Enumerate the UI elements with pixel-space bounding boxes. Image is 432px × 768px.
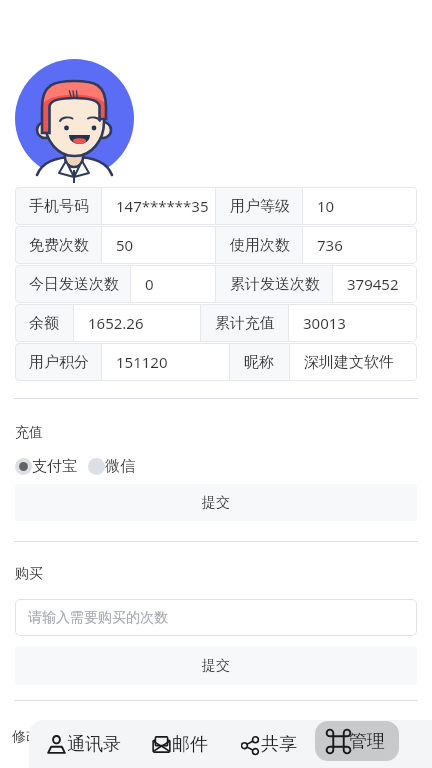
staticText: 今日发送次数 (29, 275, 119, 294)
button[interactable]: 提交 (15, 484, 417, 521)
staticText: 累计充值 (215, 314, 275, 333)
staticText: 0 (145, 274, 154, 294)
staticText: 379452 (347, 274, 399, 294)
staticText: 邮件 (172, 733, 208, 756)
button[interactable]: 通讯录 (47, 720, 121, 768)
staticText: 余额 (29, 314, 59, 333)
button[interactable]: 共享 (241, 720, 297, 768)
staticText: 购买 (15, 565, 43, 583)
button[interactable]: 支付宝 (15, 457, 77, 476)
button[interactable]: 邮件 (152, 720, 208, 768)
staticText: 147******35 (116, 196, 209, 216)
staticText: 使用次数 (230, 236, 290, 255)
staticText: 151120 (116, 352, 168, 372)
button[interactable]: 提交 (15, 646, 417, 685)
staticText: 提交 (202, 657, 230, 675)
staticText: 充值 (15, 424, 43, 442)
staticText: 共享 (261, 733, 297, 756)
staticText: 昵称 (244, 353, 274, 372)
staticText: 累计发送次数 (230, 275, 320, 294)
staticText: 管理 (349, 730, 385, 753)
staticText: 736 (317, 235, 343, 255)
staticText: 用户等级 (230, 197, 290, 216)
button[interactable]: 请输入需要购买的次数 (28, 599, 417, 636)
staticText: 手机号码 (29, 197, 89, 216)
staticText: 10 (317, 196, 335, 216)
staticText: 支付宝 (32, 457, 77, 476)
staticText: 50 (116, 235, 134, 255)
staticText: 通讯录 (67, 733, 121, 756)
staticText: 免费次数 (29, 236, 89, 255)
staticText: 深圳建文软件 (304, 353, 394, 372)
staticText: 30013 (303, 313, 346, 333)
staticText: 修改 (12, 728, 40, 746)
staticText: 用户积分 (29, 353, 89, 372)
button[interactable]: 微信 (88, 457, 135, 476)
staticText: 提交 (202, 494, 230, 512)
staticText: 1652.26 (88, 313, 144, 333)
staticText: 请输入需要购买的次数 (28, 609, 168, 627)
staticText: 微信 (105, 457, 135, 476)
button[interactable]: 管理 (329, 721, 385, 761)
